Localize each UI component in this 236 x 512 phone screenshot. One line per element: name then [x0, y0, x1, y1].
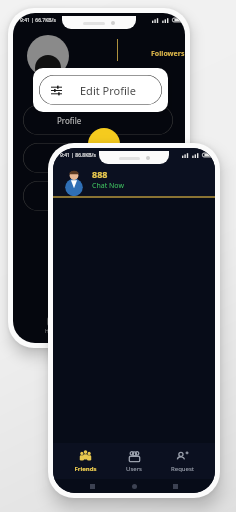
staticText: Edit Profile [80, 83, 136, 98]
button[interactable]: Profile [23, 143, 173, 173]
staticText: Profile [57, 191, 82, 202]
button[interactable]: Users [118, 447, 150, 476]
button[interactable]: Edit Profile [39, 75, 162, 105]
button[interactable]: Home [45, 317, 60, 335]
staticText: Followers [151, 49, 185, 59]
button[interactable]: Profile [23, 105, 173, 135]
button[interactable]: Request [163, 447, 202, 476]
staticText: Chat Now [92, 181, 124, 191]
staticText: 9:41 | 66.7KB/s [20, 17, 56, 24]
button[interactable]: 888 [53, 162, 215, 196]
staticText: Request [171, 465, 194, 473]
staticText: Profile [57, 115, 82, 126]
staticText: 888 [92, 168, 108, 180]
button[interactable]: Friends [66, 447, 105, 476]
staticText: 9:41 | 86.8KB/s [60, 152, 96, 159]
button[interactable]: Add [88, 128, 120, 160]
button[interactable]: Profile [23, 181, 173, 211]
staticText: Friends [74, 465, 97, 473]
staticText: Users [126, 465, 142, 473]
other: Home [132, 484, 137, 489]
staticText: Profile [57, 153, 82, 164]
staticText: Home [45, 328, 60, 335]
